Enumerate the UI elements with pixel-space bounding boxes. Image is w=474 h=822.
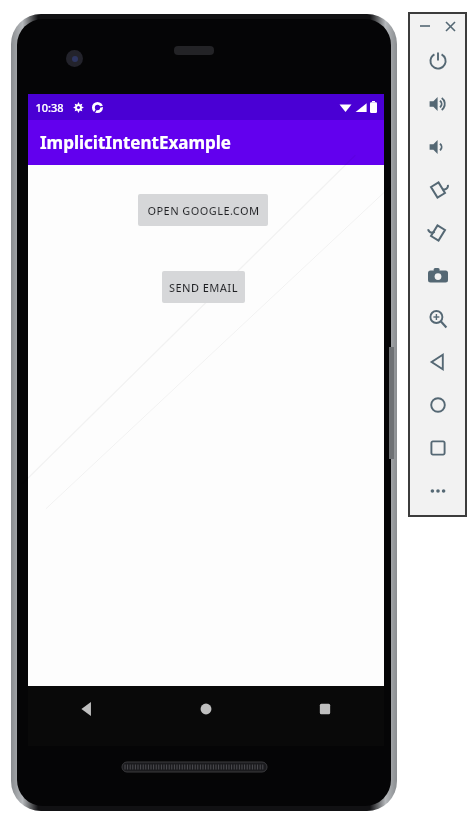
button[interactable]: Recent apps [265, 686, 384, 746]
staticText: SEND EMAIL [169, 280, 238, 295]
button[interactable]: OPEN GOOGLE.COM [138, 194, 268, 226]
button[interactable]: Overview [409, 426, 466, 469]
button[interactable]: More [409, 469, 466, 512]
button[interactable]: Volume up [409, 82, 466, 125]
button[interactable]: Power [409, 39, 466, 82]
button[interactable]: Back [28, 686, 146, 746]
button[interactable]: Close [441, 17, 459, 35]
button[interactable]: SEND EMAIL [162, 271, 245, 303]
button[interactable]: Home [146, 686, 265, 746]
button[interactable]: Screenshot [409, 254, 466, 297]
staticText: OPEN GOOGLE.COM [147, 203, 260, 218]
staticText: ImplicitIntentExample [40, 131, 231, 154]
button[interactable]: Minimise [416, 17, 434, 35]
button[interactable]: Zoom [409, 297, 466, 340]
button[interactable]: Volume down [409, 125, 466, 168]
button[interactable]: Rotate left [409, 168, 466, 211]
button[interactable]: Home [409, 383, 466, 426]
staticText: 10:38 [35, 100, 64, 115]
button[interactable]: Back [409, 340, 466, 383]
button[interactable]: Rotate right [409, 211, 466, 254]
